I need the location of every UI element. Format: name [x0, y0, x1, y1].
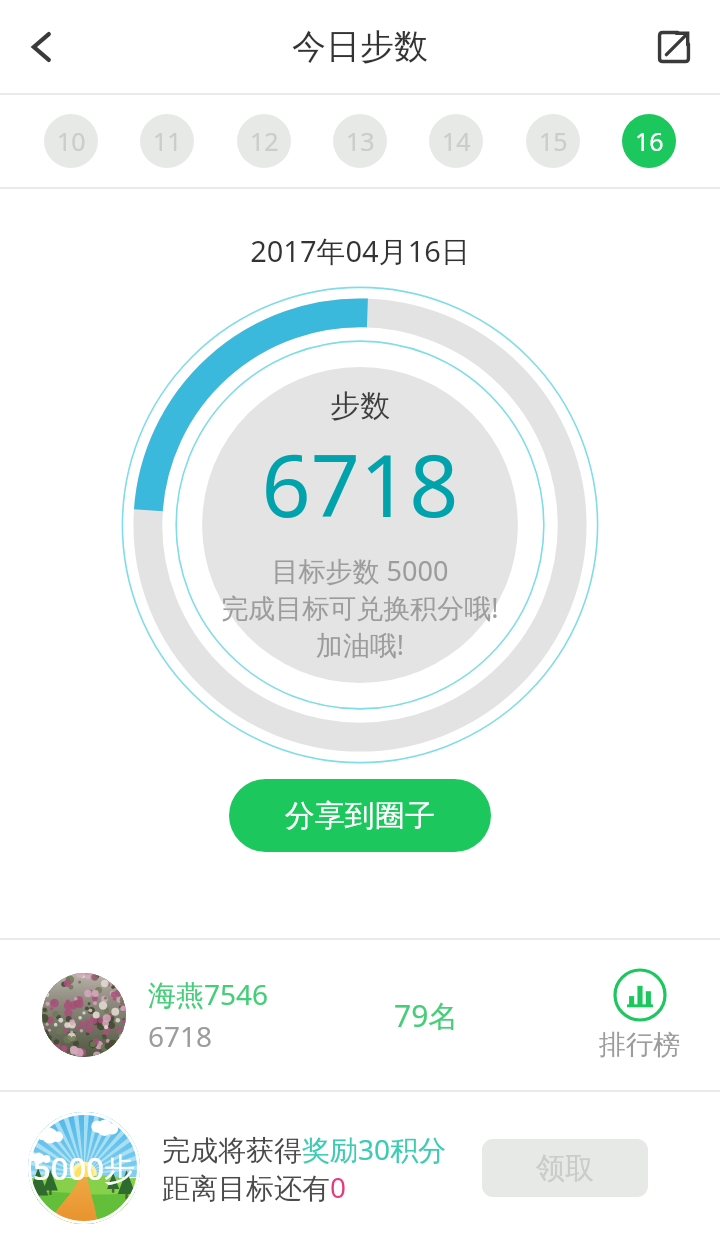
- staticText: 排行榜: [599, 1028, 680, 1062]
- staticText: 2017年04月16日: [0, 231, 720, 271]
- button[interactable]: Share: [638, 11, 710, 83]
- button[interactable]: 10: [44, 114, 98, 168]
- staticText: 分享到圈子: [285, 797, 435, 835]
- staticText: 15: [539, 124, 568, 158]
- button[interactable]: 领取: [482, 1139, 648, 1197]
- staticText: 领取: [536, 1150, 594, 1187]
- staticText: 目标步数 5000: [200, 552, 520, 589]
- button[interactable]: 15: [526, 114, 580, 168]
- staticText: 距离目标还有0: [162, 1168, 347, 1206]
- staticText: 11: [153, 124, 182, 158]
- staticText: 6718: [200, 425, 520, 542]
- staticText: 10: [57, 124, 86, 158]
- button[interactable]: 13: [333, 114, 387, 168]
- button[interactable]: 海燕7546: [0, 940, 720, 1090]
- staticText: 完成目标可兑换积分哦!: [200, 589, 520, 626]
- button[interactable]: Back: [6, 11, 78, 83]
- staticText: 加油哦!: [200, 626, 520, 663]
- button[interactable]: 14: [429, 114, 483, 168]
- staticText: 5000步: [28, 1147, 140, 1189]
- button[interactable]: 12: [237, 114, 291, 168]
- staticText: 13: [346, 124, 375, 158]
- staticText: 16: [635, 124, 664, 158]
- staticText: 79名: [394, 995, 459, 1036]
- staticText: 6718: [148, 1017, 213, 1055]
- button[interactable]: 11: [140, 114, 194, 168]
- staticText: 12: [250, 124, 279, 158]
- staticText: 今日步数: [292, 25, 428, 68]
- staticText: 海燕7546: [148, 975, 269, 1013]
- button[interactable]: 16: [622, 114, 676, 168]
- staticText: 14: [442, 124, 471, 158]
- staticText: 步数: [200, 387, 520, 425]
- button[interactable]: 排行榜: [591, 968, 688, 1062]
- button[interactable]: 分享到圈子: [229, 779, 491, 852]
- staticText: 完成将获得奖励30积分: [162, 1130, 447, 1168]
